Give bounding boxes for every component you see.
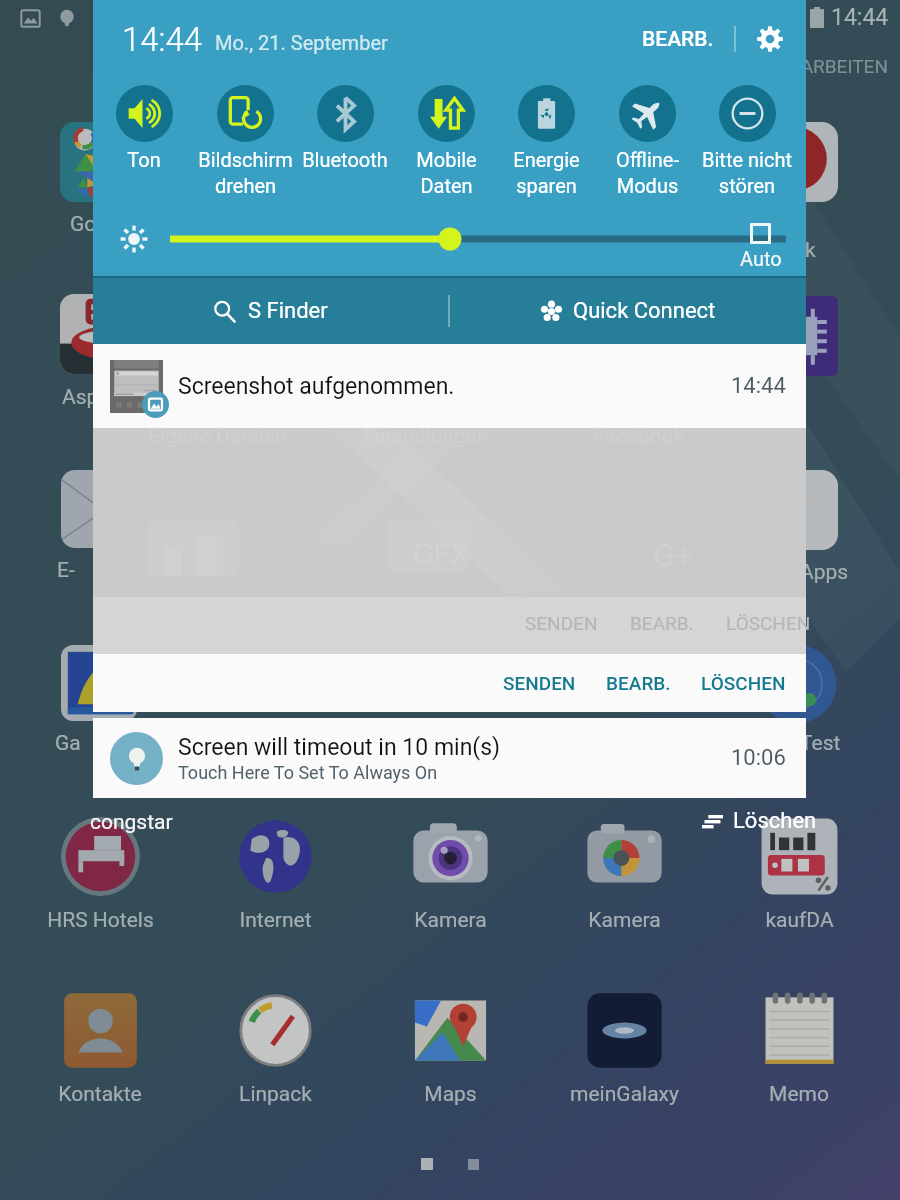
button[interactable] [61, 645, 137, 721]
button[interactable]: Linpack [195, 991, 355, 1107]
button[interactable]: Internet [195, 817, 355, 933]
staticText: Screenshot aufgenommen. [178, 373, 455, 400]
staticText: Apps [800, 560, 849, 585]
button[interactable]: Auto [723, 223, 798, 270]
staticText: LÖSCHEN [701, 672, 786, 694]
staticText: uTu mark [768, 210, 816, 262]
staticText: Bildschirm drehen [198, 148, 293, 197]
button[interactable]: S Finder [93, 278, 448, 344]
staticText: HRS Hotels [47, 908, 154, 933]
button[interactable] [758, 645, 836, 723]
staticText: Internet [239, 908, 312, 933]
staticText: Quick Connect [573, 298, 716, 324]
staticText: Mo., 21. September [215, 31, 388, 54]
button[interactable]: Mobile Daten [376, 78, 516, 197]
button[interactable]: LÖSCHEN [686, 662, 801, 704]
button[interactable]: Löschen [702, 808, 817, 834]
staticText: meinGalaxy [570, 1082, 679, 1107]
staticText: Bluetooth [302, 148, 388, 171]
staticText: SENDEN [525, 612, 598, 634]
button[interactable]: Settings [751, 20, 789, 58]
staticText: congstar [90, 810, 173, 835]
staticText: 14:44 [731, 373, 786, 399]
button[interactable] [61, 470, 139, 548]
staticText: Linpack [239, 1082, 312, 1107]
staticText: Energie sparen [513, 148, 580, 197]
staticText: 10:06 [731, 745, 786, 771]
staticText: Facebook [593, 424, 685, 449]
button[interactable]: Memo [719, 991, 879, 1107]
staticText: Screen will timeout in 10 min(s) [178, 734, 501, 761]
button[interactable] [60, 294, 140, 374]
staticText: E- [57, 558, 75, 583]
staticText: Ga [55, 731, 81, 756]
button[interactable]: HRS Hotels [20, 817, 180, 933]
staticText: kaufDA [765, 908, 834, 933]
button[interactable]: Screen will timeout in 10 min(s) [93, 718, 806, 798]
staticText: SENDEN [503, 672, 576, 694]
button[interactable] [758, 296, 838, 376]
button[interactable]: Bitte nicht stören [677, 78, 817, 197]
staticText: BEARB. [630, 612, 694, 634]
button[interactable]: Bildschirm drehen [175, 78, 315, 197]
button[interactable]: Kamera [544, 817, 704, 933]
staticText: Bitte nicht stören [702, 148, 792, 197]
button[interactable]: BEARB. [591, 662, 686, 704]
button[interactable]: Offline- Modus [577, 78, 717, 197]
staticText: 14:44 [122, 20, 203, 59]
staticText: U-Z [768, 385, 801, 410]
staticText: Touch Here To Set To Always On [178, 762, 438, 783]
button[interactable]: Maps [370, 991, 530, 1107]
button[interactable]: Screenshot aufgenommen. [93, 344, 806, 712]
button[interactable]: Ton [74, 78, 214, 171]
staticText: BEARB. [642, 27, 714, 52]
button[interactable]: SENDEN [488, 662, 591, 704]
staticText: Mobile Daten [416, 148, 477, 197]
staticText: LÖSCHEN [726, 612, 811, 634]
staticText: S Finder [248, 298, 328, 324]
staticText: Memo [769, 1082, 829, 1107]
staticText: Test [800, 731, 841, 756]
button[interactable] [758, 122, 838, 202]
staticText: Go [70, 212, 97, 237]
staticText: Einstellungen [363, 424, 489, 449]
staticText: Ton [127, 148, 161, 171]
staticText: Maps [424, 1082, 477, 1107]
button[interactable]: kaufDA [719, 817, 879, 933]
staticText: BEARBEITEN [778, 55, 888, 77]
staticText: Kontakte [58, 1082, 142, 1107]
staticText: Offline- Modus [616, 148, 679, 197]
button[interactable]: Quick Connect [450, 278, 806, 344]
staticText: Auto [740, 247, 782, 270]
button[interactable]: Energie sparen [476, 78, 616, 197]
staticText: Asp [62, 385, 99, 410]
button[interactable]: BEARB. [636, 21, 720, 58]
staticText: Eigene Dateien [148, 424, 287, 449]
staticText: Kamera [414, 908, 487, 933]
button[interactable] [758, 470, 838, 550]
button[interactable]: Bluetooth [275, 78, 415, 171]
staticText: Kamera [588, 908, 661, 933]
button[interactable] [60, 122, 140, 202]
button[interactable]: Kamera [370, 817, 530, 933]
button[interactable]: Kontakte [20, 991, 180, 1107]
button[interactable]: meinGalaxy [544, 991, 704, 1107]
staticText: BEARB. [606, 672, 671, 694]
staticText: Löschen [733, 808, 817, 834]
staticText: 14:44 [831, 4, 889, 31]
